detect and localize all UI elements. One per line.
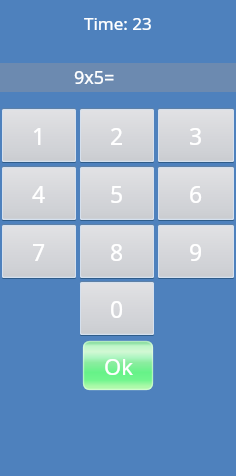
staticText: Time: 23 [84,12,152,35]
staticText: 0 [110,293,124,324]
staticText: 6 [189,178,203,209]
button[interactable]: 9 [158,224,234,279]
staticText: 9 [189,236,203,267]
button[interactable]: 4 [2,166,76,221]
button[interactable]: 1 [2,108,76,163]
button[interactable]: 3 [158,108,234,163]
staticText: 7 [32,236,46,267]
staticText: 8 [110,236,124,267]
button[interactable]: 0 [80,281,154,336]
button[interactable]: 7 [2,224,76,279]
staticText: 2 [110,120,124,151]
staticText: 1 [32,120,46,151]
button[interactable]: Ok [83,341,153,390]
staticText: Ok [104,351,133,381]
staticText: 4 [32,178,46,209]
staticText: 9x5= [74,65,115,90]
button[interactable]: 2 [80,108,154,163]
staticText: 3 [189,120,203,151]
button[interactable]: 5 [80,166,154,221]
button[interactable]: 6 [158,166,234,221]
staticText: 5 [110,178,124,209]
button[interactable]: 8 [80,224,154,279]
